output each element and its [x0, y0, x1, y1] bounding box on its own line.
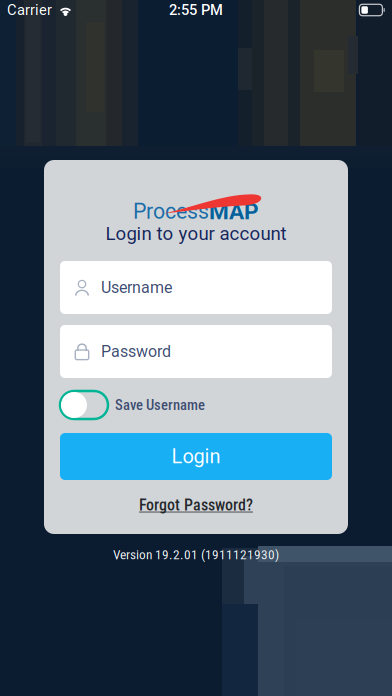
staticText: 2:55 PM	[169, 1, 223, 19]
staticText: Version 19.2.01 (1911121930)	[113, 547, 279, 563]
button[interactable]: Login	[60, 433, 332, 480]
staticText: Save Username	[115, 396, 205, 414]
staticText: Username	[101, 278, 172, 297]
staticText: MAP	[209, 198, 259, 225]
button[interactable]: Username	[60, 261, 332, 314]
button[interactable]: Forgot Password?	[139, 497, 253, 513]
staticText: Password	[101, 342, 171, 361]
staticText: Carrier	[7, 1, 52, 19]
staticText: Process	[133, 199, 209, 224]
button[interactable]: Password	[60, 325, 332, 378]
staticText: Login	[171, 445, 220, 468]
staticText: Forgot Password?	[139, 496, 253, 514]
button[interactable]: Save Username	[60, 391, 332, 419]
staticText: Login to your account	[105, 223, 286, 244]
